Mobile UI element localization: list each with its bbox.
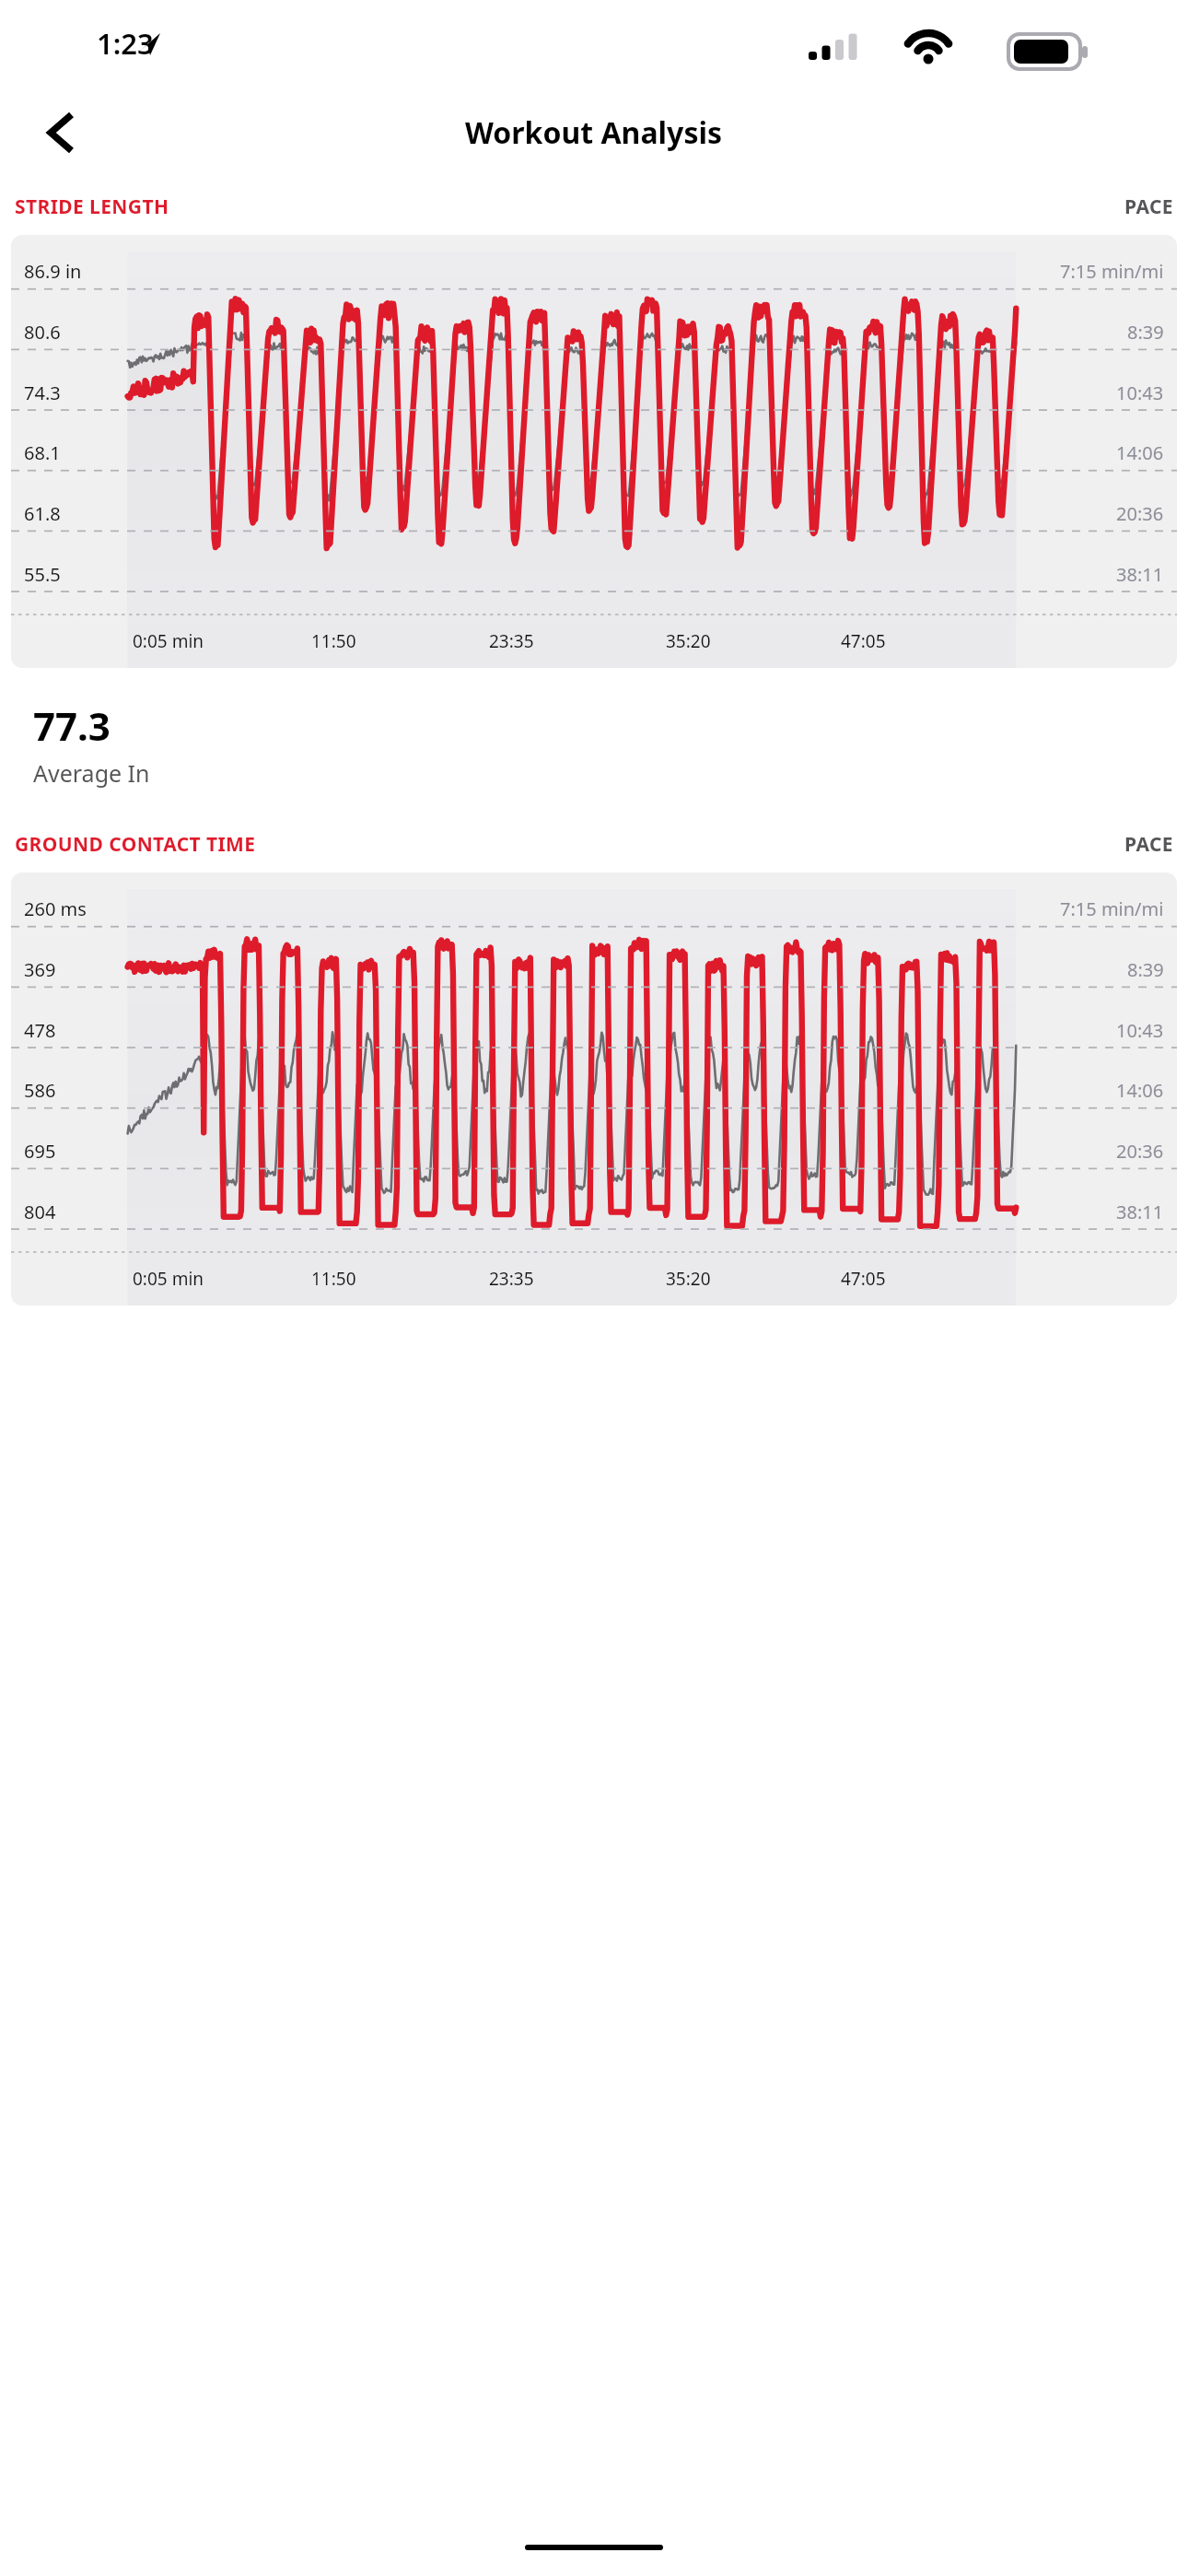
staticText: 804 (24, 1200, 56, 1224)
staticText: Workout Analysis (465, 112, 723, 153)
staticText: 10:43 (1116, 1018, 1164, 1043)
staticText: 80.6 (24, 320, 61, 345)
button[interactable]: Back (24, 99, 92, 167)
staticText: 10:43 (1116, 381, 1164, 405)
staticText: 260 ms (24, 896, 87, 921)
staticText: 11:50 (311, 629, 356, 653)
staticText: 68.1 (24, 440, 61, 465)
staticText: 20:36 (1116, 501, 1164, 526)
staticText: 7:15 min/mi (1060, 896, 1164, 921)
staticText: 369 (24, 957, 56, 982)
staticText: 0:05 min (133, 1267, 204, 1291)
staticText: PACE (1124, 831, 1173, 858)
staticText: GROUND CONTACT TIME (15, 831, 256, 858)
staticText: 14:06 (1116, 440, 1164, 465)
staticText: 47:05 (841, 629, 886, 653)
staticText: 7:15 min/mi (1060, 259, 1164, 284)
staticText: 38:11 (1116, 562, 1164, 587)
staticText: 8:39 (1127, 957, 1164, 982)
staticText: 35:20 (666, 1267, 711, 1291)
staticText: 23:35 (489, 1267, 534, 1291)
staticText: 55.5 (24, 562, 61, 587)
staticText: Average In (33, 757, 150, 789)
staticText: 74.3 (24, 381, 61, 405)
staticText: 695 (24, 1139, 56, 1164)
staticText: 20:36 (1116, 1139, 1164, 1164)
staticText: 77.3 (33, 699, 111, 752)
staticText: 38:11 (1116, 1200, 1164, 1224)
staticText: 0:05 min (133, 629, 204, 653)
staticText: 61.8 (24, 501, 61, 526)
staticText: 478 (24, 1018, 56, 1043)
staticText: 14:06 (1116, 1078, 1164, 1103)
staticText: 586 (24, 1078, 56, 1103)
staticText: PACE (1124, 193, 1173, 220)
staticText: 8:39 (1127, 320, 1164, 345)
staticText: 86.9 in (24, 259, 82, 284)
staticText: 11:50 (311, 1267, 356, 1291)
staticText: 47:05 (841, 1267, 886, 1291)
staticText: 35:20 (666, 629, 711, 653)
staticText: 23:35 (489, 629, 534, 653)
button[interactable]: 86.9 in (11, 235, 1177, 668)
button[interactable]: 260 ms (11, 872, 1177, 1306)
staticText: 1:23 (97, 24, 154, 63)
staticText: STRIDE LENGTH (15, 193, 169, 220)
